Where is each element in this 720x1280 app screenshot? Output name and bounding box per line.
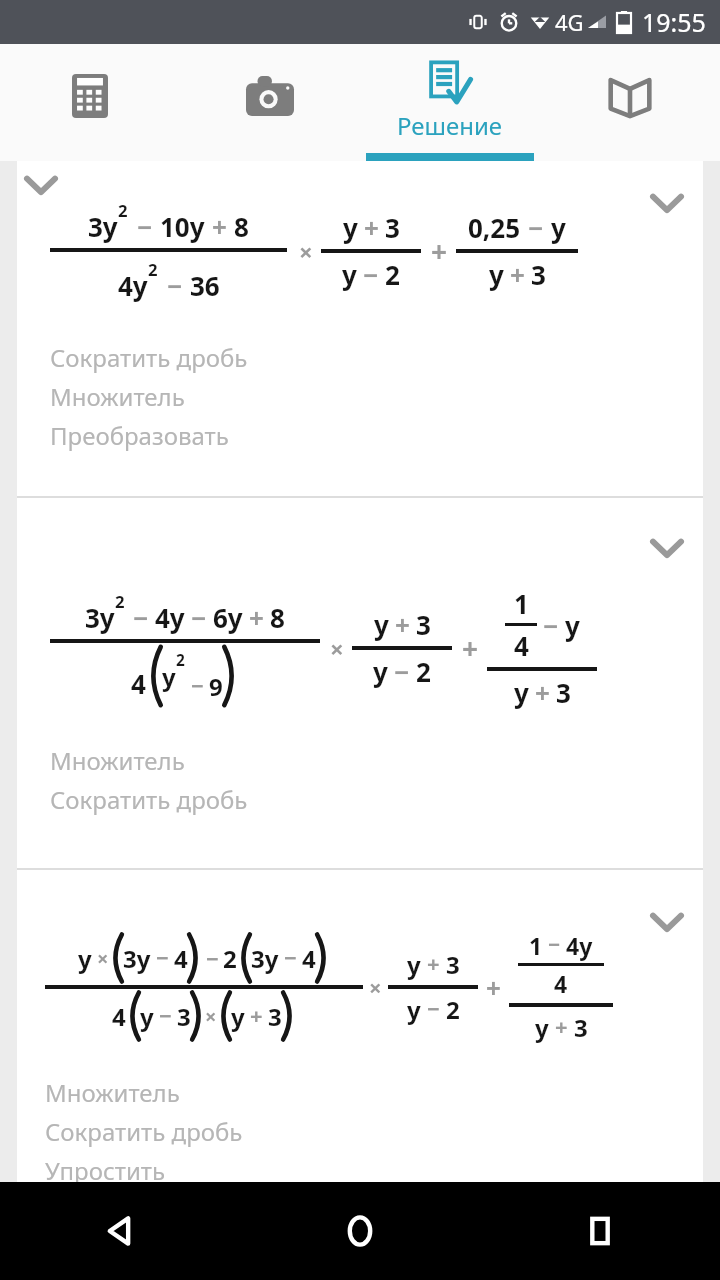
staticText: 2 — [118, 199, 128, 222]
button[interactable]: Dictionary — [540, 44, 720, 161]
button[interactable]: Преобразовать — [50, 419, 703, 452]
staticText: 1 — [514, 586, 529, 621]
button[interactable]: Camera — [180, 44, 360, 161]
button[interactable]: Calculator — [0, 44, 180, 161]
button[interactable]: Home — [240, 1182, 480, 1280]
staticText: − — [137, 209, 153, 244]
button[interactable]: Expand step — [17, 161, 703, 496]
staticText: 4 — [514, 628, 529, 663]
staticText: 2 — [416, 654, 431, 689]
staticText: + — [395, 607, 410, 642]
staticText: × — [97, 945, 109, 972]
staticText: + — [510, 257, 525, 292]
staticText: 3y — [85, 600, 115, 635]
staticText: 3 — [446, 948, 460, 981]
button[interactable]: Множитель — [50, 380, 703, 413]
staticText: y — [489, 257, 504, 292]
staticText: 19:55 — [642, 5, 706, 39]
staticText: × — [369, 972, 382, 1002]
staticText: + — [250, 1000, 263, 1030]
staticText: 4 — [131, 666, 146, 701]
staticText: 3 — [177, 1000, 191, 1033]
button[interactable]: Множитель — [45, 1076, 703, 1109]
staticText: 4 — [302, 942, 316, 975]
button[interactable]: Expand step — [17, 870, 703, 1182]
staticText: − — [159, 1000, 172, 1030]
staticText: 3 — [531, 257, 546, 292]
staticText: y — [407, 993, 421, 1026]
staticText: y — [407, 948, 421, 981]
staticText: y — [78, 942, 92, 975]
staticText: − — [191, 600, 207, 635]
button[interactable]: Expand step — [643, 179, 691, 227]
staticText: − — [191, 670, 204, 700]
staticText: y — [514, 675, 529, 710]
staticText: 4 — [112, 1000, 126, 1033]
staticText: 2 — [223, 942, 237, 975]
staticText: 3 — [268, 1000, 282, 1033]
button[interactable]: Сократить дробь — [50, 783, 703, 816]
staticText: 9 — [209, 670, 223, 703]
staticText: − — [167, 268, 183, 303]
staticText: 3 — [385, 210, 400, 245]
staticText: − — [543, 608, 559, 643]
staticText: − — [427, 993, 440, 1023]
staticText: + — [535, 675, 550, 710]
staticText: + — [462, 629, 479, 667]
staticText: 4y — [118, 268, 148, 303]
staticText: 2 — [385, 257, 400, 292]
other: Calculator — [72, 74, 108, 118]
staticText: 4 — [174, 942, 188, 975]
staticText: 4 — [554, 968, 568, 999]
staticText: 3 — [556, 675, 571, 710]
staticText: y — [535, 1011, 549, 1044]
staticText: − — [394, 654, 410, 689]
staticText: 8 — [234, 209, 249, 244]
staticText: 4y — [155, 600, 185, 635]
button[interactable]: Recent apps — [480, 1182, 720, 1280]
staticText: − — [548, 930, 561, 959]
staticText: + — [364, 210, 379, 245]
button[interactable]: Back — [0, 1182, 240, 1280]
staticText: + — [555, 1011, 568, 1041]
staticText: 0,25 — [468, 210, 521, 245]
button[interactable]: Множитель — [50, 744, 703, 777]
staticText: 3y — [251, 942, 279, 975]
button[interactable]: Expand step — [643, 898, 691, 946]
staticText: 10y — [160, 209, 205, 244]
staticText: − — [206, 943, 219, 973]
other: Camera — [246, 76, 294, 116]
button[interactable]: Expand step — [17, 498, 703, 868]
staticText: + — [427, 948, 440, 978]
button[interactable]: Expand step — [17, 161, 65, 209]
staticText: y — [342, 257, 357, 292]
staticText: 3 — [416, 607, 431, 642]
staticText: y — [162, 660, 176, 693]
staticText: + — [431, 232, 448, 270]
staticText: y — [140, 1000, 154, 1033]
staticText: × — [205, 1003, 217, 1030]
staticText: 1 — [529, 930, 543, 961]
staticText: 2 — [115, 590, 125, 613]
other: Dictionary — [609, 75, 651, 117]
staticText: y — [374, 607, 389, 642]
button[interactable]: Сократить дробь — [50, 341, 703, 374]
staticText: 4G — [555, 7, 584, 37]
button[interactable]: Решение — [360, 44, 540, 161]
staticText: y — [551, 210, 566, 245]
staticText: − — [528, 210, 544, 245]
staticText: + — [212, 209, 227, 244]
staticText: × — [299, 235, 313, 268]
button[interactable]: Expand step — [643, 524, 691, 572]
staticText: + — [249, 600, 264, 635]
staticText: y — [373, 654, 388, 689]
staticText: − — [133, 600, 149, 635]
staticText: 3y — [123, 942, 151, 975]
staticText: 3 — [574, 1011, 588, 1044]
staticText: 2 — [176, 650, 185, 671]
staticText: 2 — [148, 258, 158, 281]
staticText: − — [284, 942, 297, 972]
button[interactable]: Упростить — [45, 1154, 703, 1182]
button[interactable]: Сократить дробь — [45, 1115, 703, 1148]
staticText: − — [156, 942, 169, 972]
